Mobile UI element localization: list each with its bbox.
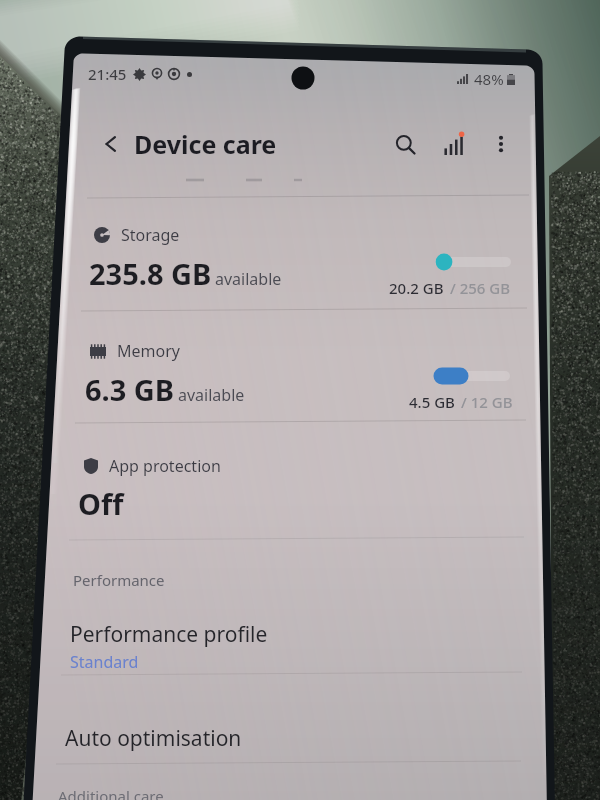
- button[interactable]: Performance profile: [70, 620, 520, 678]
- button[interactable]: Search: [386, 125, 424, 163]
- staticText: available: [178, 384, 245, 406]
- staticText: Device care: [134, 127, 277, 161]
- staticText: 4.5 GB: [409, 392, 455, 412]
- staticText: 48%: [474, 69, 504, 89]
- button[interactable]: Auto optimisation: [65, 694, 520, 764]
- staticText: Performance profile: [70, 620, 268, 649]
- staticText: Off: [78, 484, 124, 523]
- staticText: 20.2 GB: [389, 278, 444, 298]
- staticText: 6.3 GB: [85, 370, 175, 409]
- staticText: 21:45: [88, 64, 127, 84]
- button[interactable]: Memory: [90, 321, 530, 425]
- staticText: / 12 GB: [461, 392, 513, 412]
- button[interactable]: More options: [484, 127, 518, 161]
- staticText: Storage: [121, 224, 180, 246]
- button[interactable]: Statistics: [436, 125, 474, 163]
- staticText: / 256 GB: [450, 278, 511, 298]
- staticText: 235.8 GB: [89, 254, 212, 293]
- staticText: available: [215, 268, 282, 290]
- button[interactable]: Back: [92, 125, 130, 163]
- staticText: Performance: [73, 570, 165, 590]
- staticText: Additional care: [58, 786, 164, 800]
- staticText: Memory: [117, 340, 180, 362]
- staticText: Standard: [70, 651, 139, 673]
- staticText: App protection: [109, 455, 221, 477]
- button[interactable]: Storage: [94, 204, 532, 308]
- staticText: Auto optimisation: [65, 724, 242, 753]
- button[interactable]: App protection: [84, 436, 528, 544]
